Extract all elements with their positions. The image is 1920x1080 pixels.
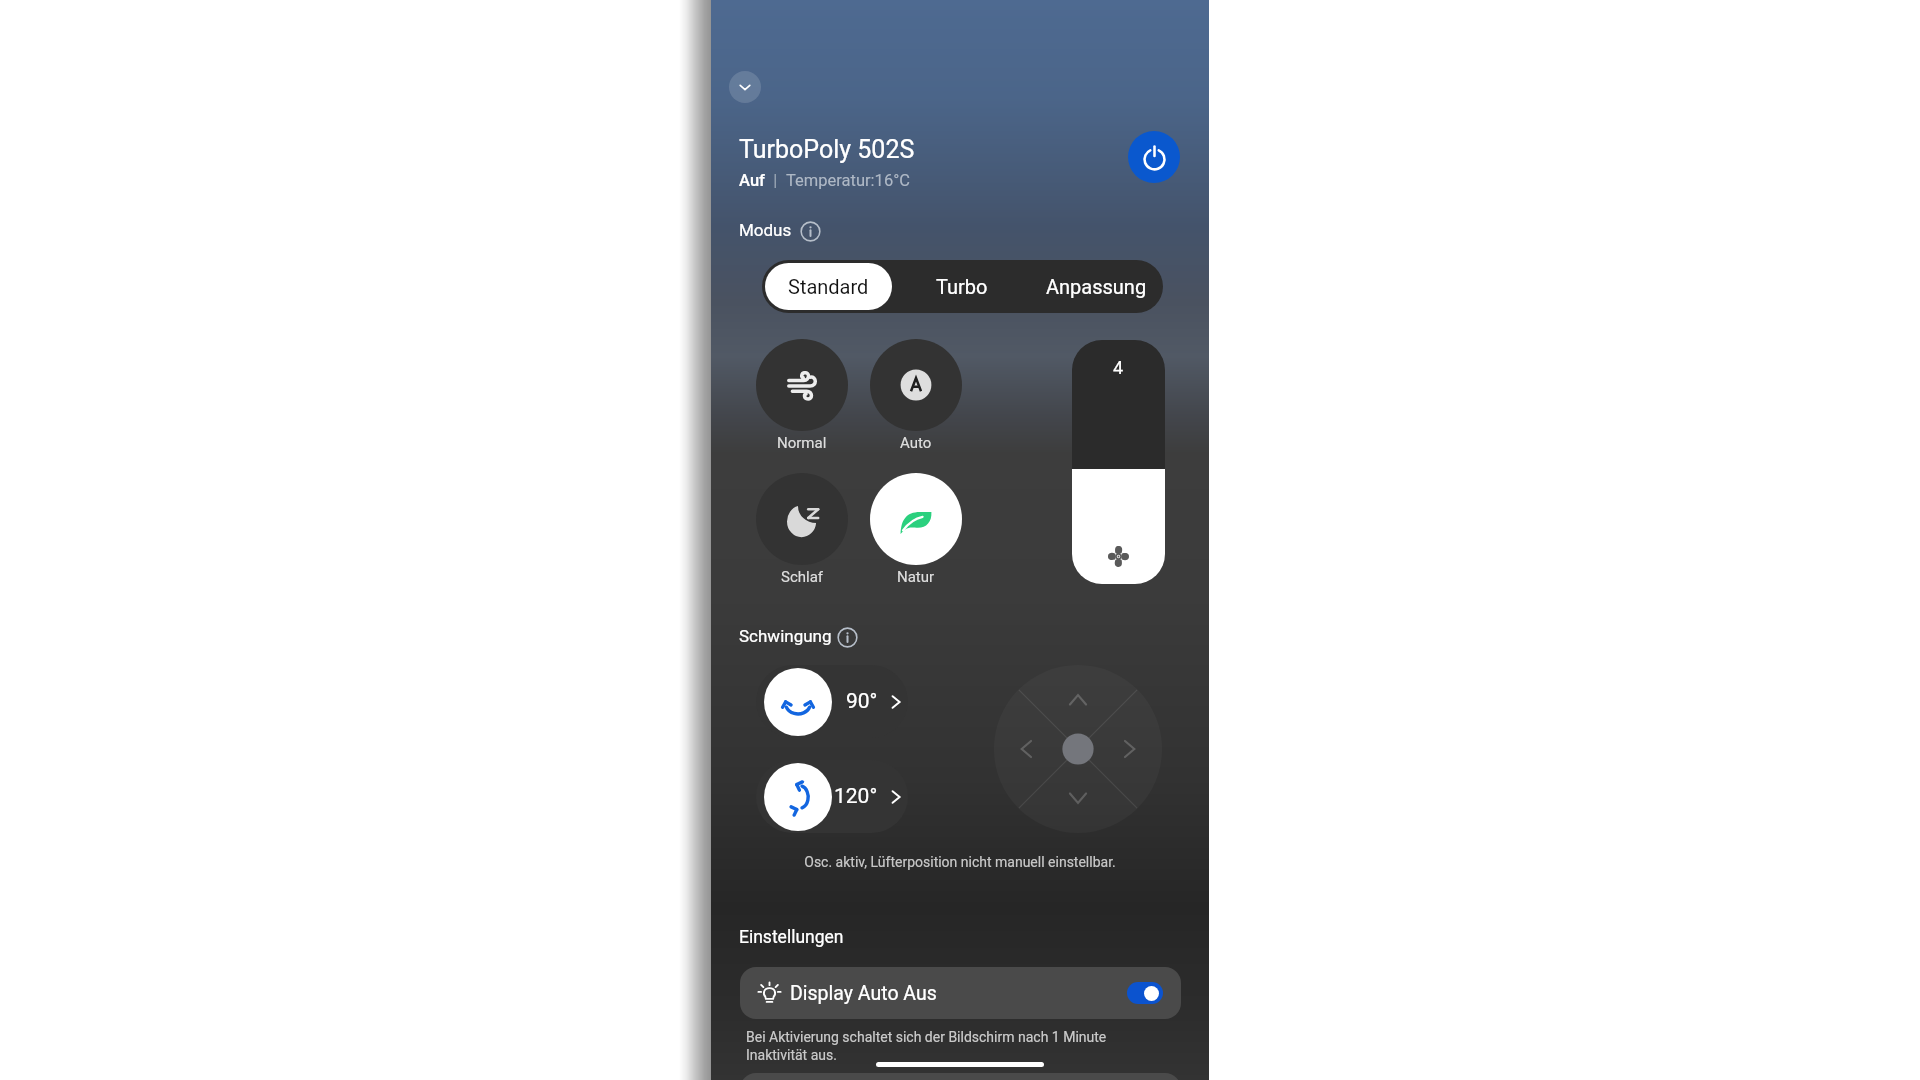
staticText: |	[765, 171, 786, 190]
staticText: 120°	[834, 784, 878, 809]
button[interactable]: Direction pad	[994, 665, 1162, 833]
button[interactable]: Standard	[765, 263, 892, 310]
staticText: Einstellungen	[739, 927, 844, 948]
button[interactable]: Anpassung	[1032, 263, 1160, 310]
button[interactable]: Turbo	[898, 263, 1026, 310]
staticText: 90°	[846, 689, 878, 714]
staticText: Osc. aktiv, Lüfterposition nicht manuell…	[711, 854, 1209, 870]
staticText: TurboPoly 502S	[739, 135, 915, 164]
button[interactable]	[870, 473, 962, 565]
staticText: Turbo	[936, 275, 988, 298]
button[interactable]: 120°	[756, 760, 908, 833]
button[interactable]	[870, 339, 962, 431]
staticText: 4	[1113, 357, 1124, 378]
staticText: Normal	[777, 434, 827, 452]
button[interactable]: Display Auto Aus	[740, 967, 1181, 1019]
button[interactable]: Collapse	[729, 71, 761, 103]
staticText: Schwingung	[739, 626, 832, 646]
staticText: Display Auto Aus	[790, 982, 937, 1005]
button[interactable]: Power	[1128, 131, 1180, 183]
staticText: Auto	[900, 434, 932, 452]
button[interactable]: Fan speed level 4	[1072, 340, 1165, 584]
button[interactable]	[756, 473, 848, 565]
staticText: Auf	[739, 171, 765, 190]
staticText: Standard	[788, 275, 869, 298]
staticText: Anpassung	[1046, 275, 1147, 298]
staticText: Temperatur:16°C	[786, 171, 911, 190]
button[interactable]: 90°	[756, 665, 908, 738]
staticText: Bei Aktivierung schaltet sich der Bildsc…	[746, 1029, 1107, 1063]
staticText: Modus	[739, 220, 792, 240]
staticText: Schlaf	[781, 568, 824, 586]
staticText: Natur	[897, 568, 935, 586]
button[interactable]	[756, 339, 848, 431]
